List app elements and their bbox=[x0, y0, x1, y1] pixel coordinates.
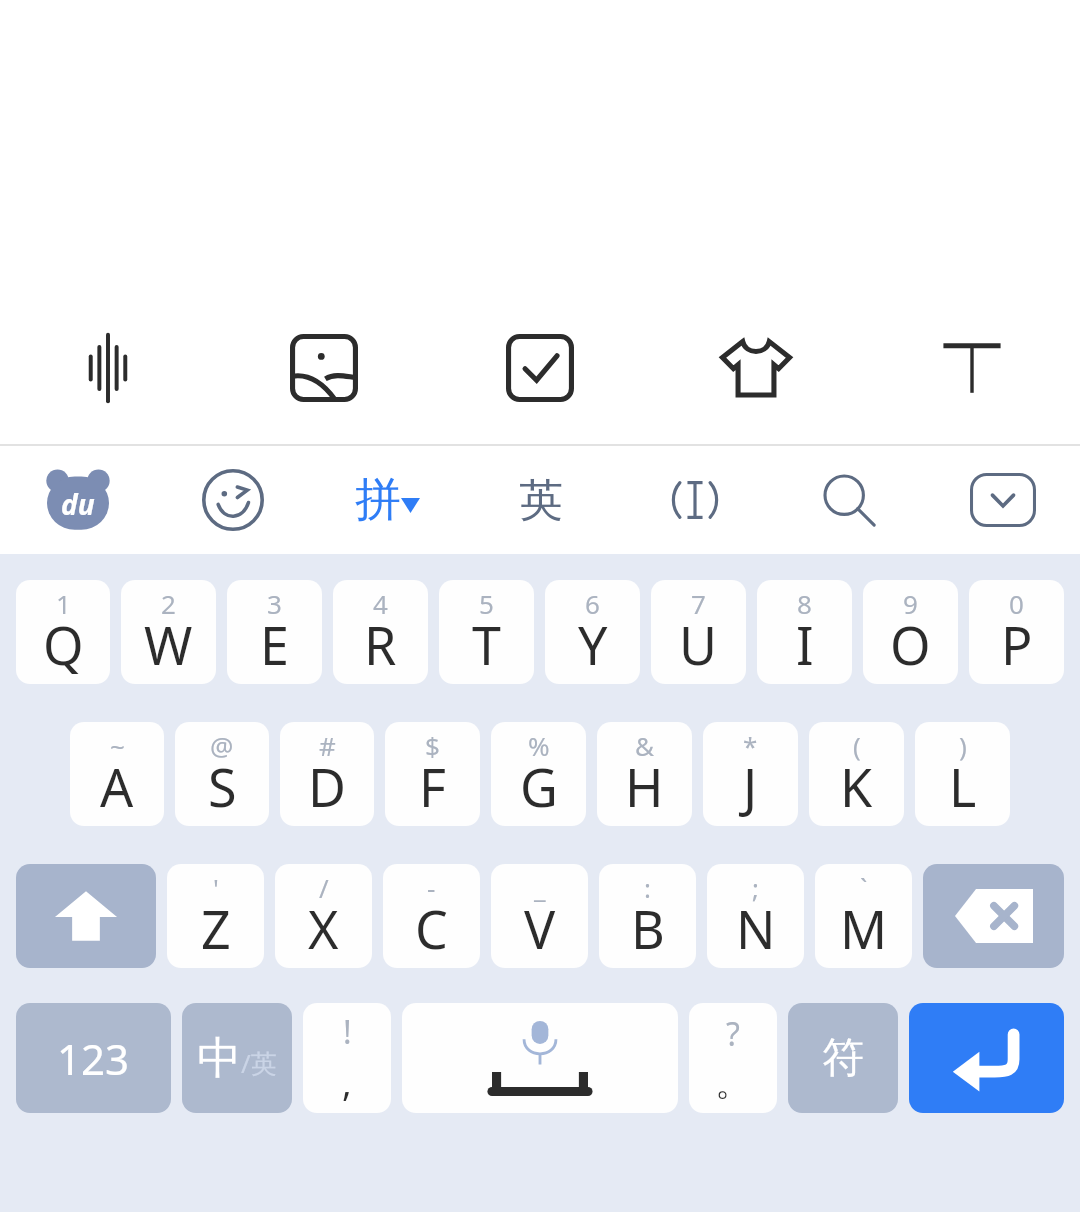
staticText: T bbox=[472, 609, 501, 680]
button[interactable]: Space bbox=[402, 1003, 678, 1113]
staticText: ( bbox=[853, 728, 861, 763]
button[interactable]: 8 bbox=[757, 580, 852, 684]
staticText: 2 bbox=[161, 586, 176, 621]
button[interactable]: - bbox=[383, 864, 480, 968]
staticText: ; bbox=[752, 870, 759, 905]
staticText: W bbox=[144, 609, 193, 680]
button[interactable]: 5 bbox=[439, 580, 534, 684]
staticText: Z bbox=[201, 893, 231, 964]
staticText: ' bbox=[213, 870, 219, 905]
staticText: X bbox=[308, 893, 339, 964]
staticText: ) bbox=[959, 728, 967, 763]
staticText: F bbox=[419, 751, 446, 822]
staticText: 5 bbox=[479, 586, 494, 621]
button[interactable]: Backspace bbox=[923, 864, 1064, 968]
staticText: Q bbox=[43, 609, 84, 680]
button[interactable]: & bbox=[597, 722, 692, 826]
staticText: 符 bbox=[822, 1032, 864, 1085]
button[interactable]: Search bbox=[772, 446, 926, 554]
staticText: A bbox=[100, 751, 134, 822]
staticText: 。 bbox=[715, 1060, 751, 1105]
staticText: /英 bbox=[241, 1045, 277, 1081]
staticText: ~ bbox=[110, 728, 125, 763]
button[interactable]: ; bbox=[707, 864, 804, 968]
staticText: @ bbox=[210, 728, 234, 763]
staticText: / bbox=[319, 870, 329, 905]
staticText: O bbox=[890, 609, 931, 680]
button[interactable]: Hide keyboard bbox=[926, 446, 1080, 554]
button[interactable]: English mode bbox=[464, 446, 618, 554]
staticText: M bbox=[840, 893, 888, 964]
button[interactable]: Move cursor bbox=[618, 446, 772, 554]
button[interactable]: ) bbox=[915, 722, 1010, 826]
button[interactable]: / bbox=[275, 864, 372, 968]
staticText: C bbox=[415, 893, 448, 964]
staticText: S bbox=[208, 751, 237, 822]
staticText: 4 bbox=[373, 586, 388, 621]
button[interactable]: ? bbox=[689, 1003, 777, 1113]
button[interactable]: ! bbox=[303, 1003, 391, 1113]
staticText: 1 bbox=[56, 586, 71, 621]
button[interactable]: $ bbox=[385, 722, 480, 826]
button[interactable]: _ bbox=[491, 864, 588, 968]
button[interactable]: Checklist bbox=[432, 292, 648, 444]
staticText: 中 bbox=[197, 1031, 241, 1086]
staticText: E bbox=[260, 609, 289, 680]
button[interactable]: * bbox=[703, 722, 798, 826]
staticText: ! bbox=[343, 1010, 352, 1054]
staticText: du bbox=[61, 485, 95, 523]
staticText: V bbox=[524, 893, 556, 964]
staticText: : bbox=[644, 870, 651, 905]
staticText: 7 bbox=[691, 586, 706, 621]
button[interactable]: 中 bbox=[182, 1003, 292, 1113]
button[interactable]: # bbox=[280, 722, 374, 826]
button[interactable]: Sticker bbox=[648, 292, 864, 444]
staticText: 8 bbox=[797, 586, 812, 621]
button[interactable]: ' bbox=[167, 864, 264, 968]
button[interactable]: Enter bbox=[909, 1003, 1064, 1113]
button[interactable]: Shift bbox=[16, 864, 156, 968]
staticText: J bbox=[743, 751, 758, 822]
staticText: 拼 bbox=[355, 471, 401, 529]
button[interactable]: : bbox=[599, 864, 696, 968]
button[interactable]: ` bbox=[815, 864, 912, 968]
button[interactable]: Voice bbox=[0, 292, 216, 444]
staticText: 英 bbox=[519, 473, 563, 528]
button[interactable]: Pinyin mode bbox=[310, 446, 464, 554]
button[interactable]: % bbox=[491, 722, 586, 826]
staticText: P bbox=[1001, 609, 1033, 680]
staticText: ? bbox=[726, 1012, 740, 1056]
staticText: 0 bbox=[1009, 586, 1024, 621]
staticText: * bbox=[743, 728, 758, 763]
staticText: Y bbox=[578, 609, 608, 680]
staticText: 6 bbox=[585, 586, 600, 621]
button[interactable]: 6 bbox=[545, 580, 640, 684]
button[interactable]: @ bbox=[175, 722, 269, 826]
staticText: _ bbox=[534, 870, 546, 905]
button[interactable]: 4 bbox=[333, 580, 428, 684]
button[interactable]: 1 bbox=[16, 580, 110, 684]
staticText: & bbox=[635, 728, 655, 763]
button[interactable]: 符 bbox=[788, 1003, 898, 1113]
button[interactable]: 3 bbox=[227, 580, 322, 684]
staticText: 9 bbox=[903, 586, 918, 621]
button[interactable]: 2 bbox=[121, 580, 216, 684]
button[interactable]: ( bbox=[809, 722, 904, 826]
staticText: N bbox=[736, 893, 776, 964]
button[interactable]: 123 bbox=[16, 1003, 171, 1113]
button[interactable]: Image bbox=[216, 292, 432, 444]
button[interactable]: ~ bbox=[70, 722, 164, 826]
staticText: , bbox=[342, 1058, 352, 1107]
button[interactable]: Text style bbox=[864, 292, 1080, 444]
button[interactable]: 0 bbox=[969, 580, 1064, 684]
button[interactable]: 7 bbox=[651, 580, 746, 684]
staticText: - bbox=[427, 870, 436, 905]
button[interactable]: 9 bbox=[863, 580, 958, 684]
staticText: # bbox=[319, 728, 336, 763]
staticText: G bbox=[520, 751, 558, 822]
staticText: 123 bbox=[57, 1030, 130, 1087]
staticText: I bbox=[796, 609, 814, 680]
button[interactable]: Emoji bbox=[155, 446, 310, 554]
button[interactable]: Baidu input settings bbox=[0, 446, 155, 554]
staticText: D bbox=[308, 751, 346, 822]
